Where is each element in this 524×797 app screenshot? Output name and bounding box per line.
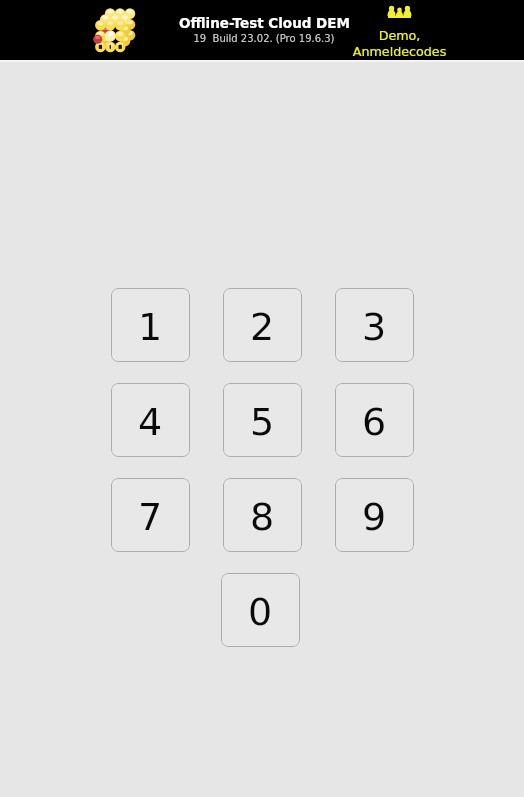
button[interactable]: User account (349, 5, 450, 61)
button[interactable]: 7 (111, 478, 190, 552)
button[interactable]: 4 (111, 383, 190, 457)
staticText: 5 (250, 400, 275, 444)
staticText: 7 (138, 495, 163, 539)
button[interactable]: 9 (335, 478, 414, 552)
staticText: 19 Build 23.02. (Pro 19.6.3) (193, 33, 335, 45)
button[interactable]: 2 (223, 288, 302, 362)
staticText: 6 (362, 400, 387, 444)
staticText: Demo, Anmeldecodes (349, 28, 450, 59)
other: User account (388, 5, 411, 18)
button[interactable]: 0 (221, 573, 300, 647)
staticText: 4 (138, 400, 163, 444)
staticText: Offline-Test Cloud DEM (179, 15, 350, 31)
staticText: 0 (248, 590, 273, 634)
button[interactable]: 5 (223, 383, 302, 457)
button[interactable]: 6 (335, 383, 414, 457)
staticText: 2 (250, 305, 275, 349)
staticText: 9 (362, 495, 387, 539)
button[interactable]: 3 (335, 288, 414, 362)
staticText: 3 (362, 305, 387, 349)
staticText: 1 (138, 305, 163, 349)
button[interactable]: 8 (223, 478, 302, 552)
button[interactable]: 1 (111, 288, 190, 362)
button[interactable]: App logo, home (92, 0, 132, 53)
staticText: 8 (250, 495, 275, 539)
